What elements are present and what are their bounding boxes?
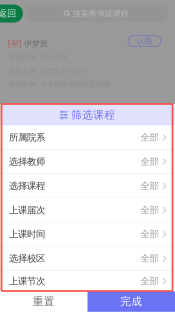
staticText: 选择教师: [9, 156, 45, 167]
staticText: 上课届次: [9, 204, 45, 216]
staticText: 所属院系: [9, 132, 45, 143]
button[interactable]: 完成: [87, 291, 175, 312]
staticText: 全部: [140, 275, 158, 287]
staticText: 重置: [33, 295, 55, 308]
button[interactable]: 选择教师: [0, 150, 175, 174]
button[interactable]: 返回: [0, 4, 23, 22]
staticText: 选择课程: [9, 180, 45, 192]
staticText: [帮]: [8, 38, 22, 49]
staticText: 全部: [140, 204, 158, 216]
button[interactable]: 上课节次: [0, 271, 175, 291]
staticText: 搜索教师或课程: [73, 9, 129, 18]
staticText: 上课时间: [9, 228, 45, 240]
button[interactable]: 上课届次: [0, 198, 175, 222]
staticText: 上课节次: [9, 275, 45, 287]
button[interactable]: 重置: [0, 291, 87, 312]
button[interactable]: 所属院系: [0, 126, 175, 150]
staticText: 全部: [140, 253, 158, 264]
staticText: 全部: [140, 228, 158, 240]
button[interactable]: 选择校区: [0, 247, 175, 271]
staticText: 筛选课程: [71, 108, 115, 121]
button[interactable]: 选择课程: [0, 174, 175, 198]
staticText: 选择校区: [9, 253, 45, 264]
button[interactable]: 认领: [128, 35, 161, 46]
staticText: 全部: [140, 132, 158, 143]
staticText: 全部: [140, 180, 158, 192]
staticText: 伊梦茜: [24, 39, 48, 49]
staticText: 全部: [140, 156, 158, 167]
button[interactable]: 上课时间: [0, 222, 175, 247]
staticText: 返回: [0, 8, 16, 19]
staticText: 认领: [136, 36, 152, 46]
staticText: 完成: [120, 295, 142, 308]
